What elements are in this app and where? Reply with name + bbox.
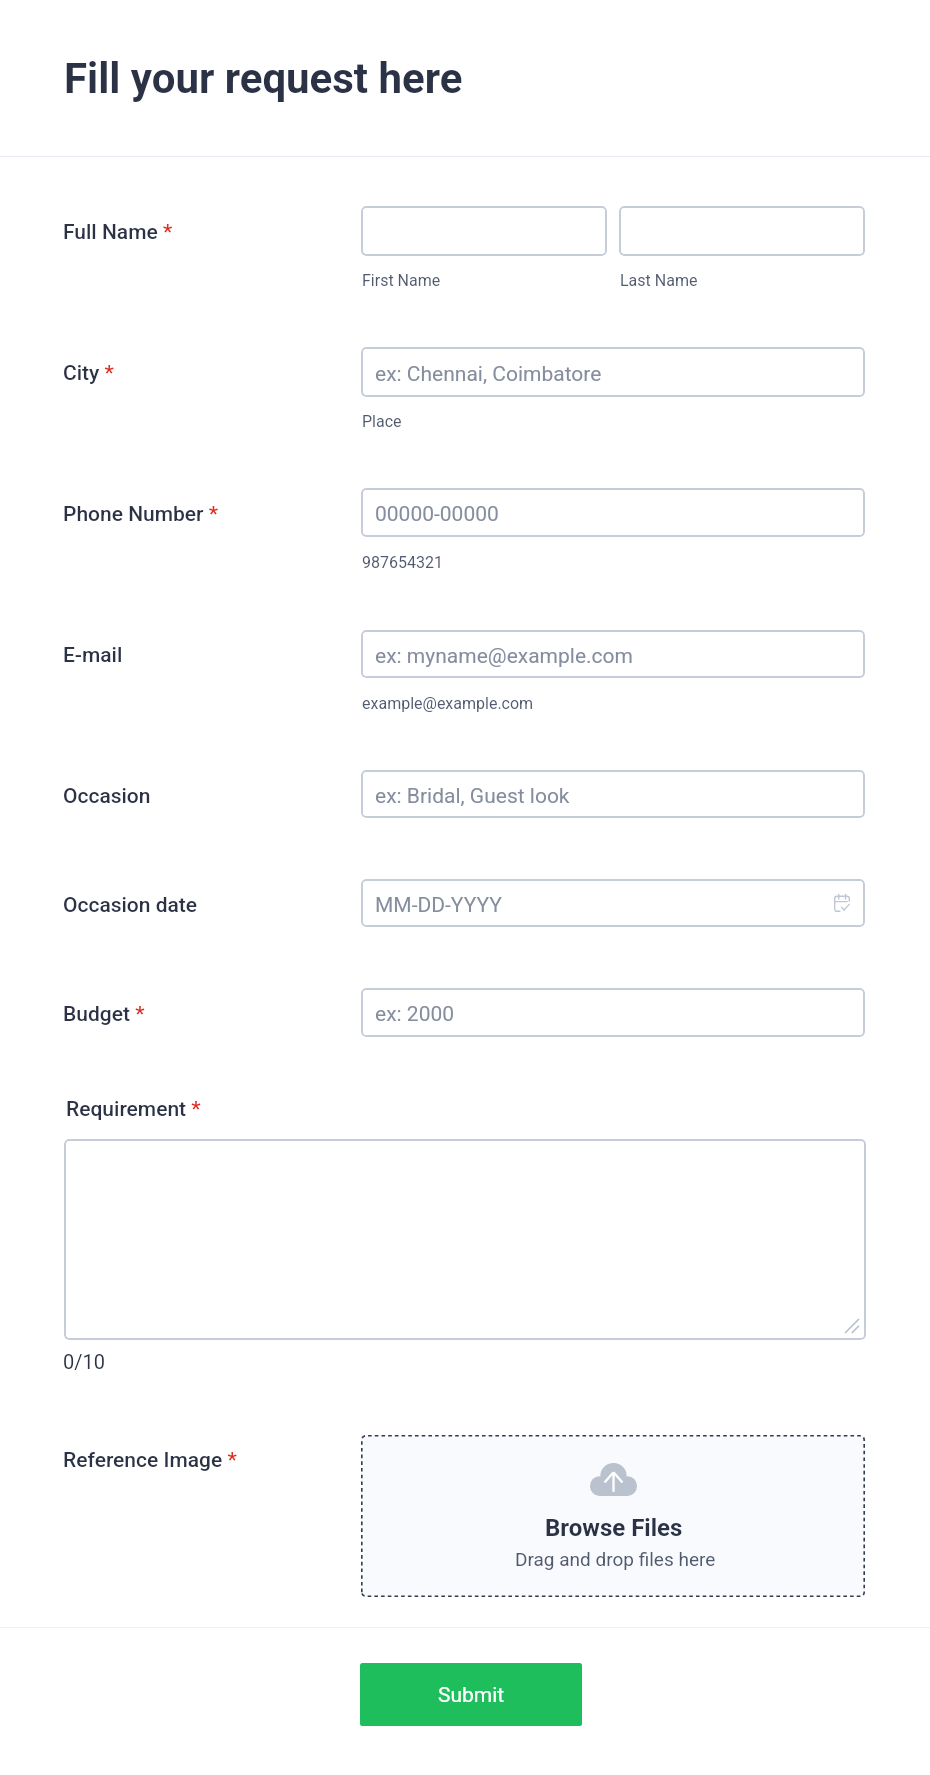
button[interactable]: Last name	[619, 206, 865, 256]
staticText: Occasion date	[63, 893, 198, 918]
staticText: ex: 2000	[375, 1002, 455, 1027]
staticText: 0/10	[63, 1350, 105, 1373]
staticText: Last Name	[620, 271, 698, 290]
staticText: Full Name *	[63, 220, 173, 245]
staticText: ex: myname@example.com	[375, 644, 633, 669]
button[interactable]: Pick a date	[834, 894, 850, 912]
staticText: example@example.com	[362, 694, 534, 713]
staticText: 00000-00000	[375, 502, 499, 527]
staticText: Phone Number *	[63, 502, 219, 527]
button[interactable]: E-mail	[361, 630, 865, 678]
staticText: E-mail	[63, 643, 123, 668]
staticText: ex: Bridal, Guest look	[375, 784, 570, 809]
staticText: Occasion	[63, 784, 151, 809]
staticText: Requirement *	[66, 1097, 201, 1122]
staticText: MM-DD-YYYY	[375, 893, 502, 918]
button[interactable]: Occasion	[361, 770, 865, 818]
staticText: Browse Files	[545, 1514, 683, 1542]
button[interactable]: Submit	[360, 1663, 582, 1726]
staticText: Drag and drop files here	[515, 1548, 716, 1570]
staticText: First Name	[362, 271, 441, 290]
button[interactable]: Budget	[361, 988, 865, 1037]
staticText: Reference Image *	[63, 1448, 237, 1473]
button[interactable]: Phone Number	[361, 488, 865, 537]
button[interactable]: First name	[361, 206, 607, 256]
staticText: 987654321	[362, 553, 443, 572]
staticText: Budget *	[63, 1002, 145, 1027]
staticText: Place	[362, 412, 402, 431]
button[interactable]: Occasion date	[361, 879, 865, 927]
staticText: City *	[63, 361, 114, 386]
staticText: Fill your request here	[64, 54, 463, 103]
button[interactable]: Browse files, drag and drop files here	[361, 1435, 865, 1597]
button[interactable]: Requirement	[64, 1139, 866, 1340]
staticText: Submit	[438, 1683, 505, 1708]
staticText: ex: Chennai, Coimbatore	[375, 362, 602, 387]
button[interactable]: City	[361, 347, 865, 397]
